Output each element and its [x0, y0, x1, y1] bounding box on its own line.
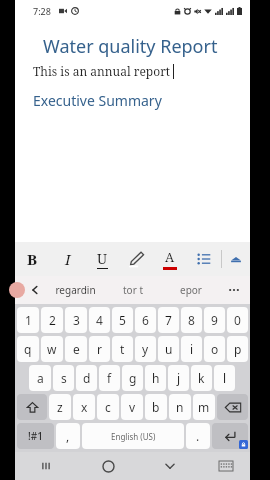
button[interactable]: Recents [15, 452, 77, 480]
staticText: u [165, 341, 173, 357]
staticText: 9 [211, 312, 218, 328]
button[interactable]: tor t [104, 276, 162, 304]
staticText: English (US) [111, 431, 156, 442]
staticText: l [223, 370, 227, 386]
button[interactable]: k [191, 365, 212, 391]
staticText: 4 [96, 312, 103, 328]
staticText: d [83, 370, 91, 386]
staticText: f [107, 370, 112, 386]
button[interactable]: v [121, 394, 143, 420]
staticText: m [198, 399, 210, 415]
staticText: i [190, 341, 194, 357]
button[interactable]: s [53, 365, 74, 391]
staticText: B [27, 249, 38, 269]
button[interactable]: Bold [15, 242, 50, 276]
button[interactable]: b [145, 394, 167, 420]
button[interactable]: 3 [65, 307, 87, 333]
button[interactable]: 4 [89, 307, 110, 333]
button[interactable]: e [65, 336, 87, 362]
button[interactable]: p [227, 336, 248, 362]
staticText: k [198, 370, 205, 386]
button[interactable]: j [168, 365, 189, 391]
button[interactable]: 0 [227, 307, 248, 333]
button[interactable]: u [158, 336, 179, 362]
staticText: c [105, 399, 111, 415]
staticText: s [61, 370, 67, 386]
staticText: U [97, 249, 108, 268]
staticText: v [129, 399, 136, 415]
button[interactable]: d [76, 365, 97, 391]
button[interactable]: Keyboard [201, 452, 250, 480]
staticText: Executive Summary [33, 91, 162, 110]
button[interactable]: q [17, 336, 39, 362]
button[interactable]: y [135, 336, 156, 362]
button[interactable]: Home [77, 452, 139, 480]
button[interactable]: z [49, 394, 71, 420]
button[interactable]: Highlight [119, 242, 153, 276]
button[interactable]: Underline [85, 242, 119, 276]
button[interactable]: 2 [41, 307, 63, 333]
button[interactable]: t [112, 336, 133, 362]
button[interactable]: Shift [17, 394, 47, 420]
button[interactable]: Font color [153, 242, 187, 276]
button[interactable]: i [181, 336, 202, 362]
button[interactable]: x [73, 394, 95, 420]
staticText: . [196, 428, 200, 444]
button[interactable]: n [169, 394, 191, 420]
button[interactable]: Previous [26, 281, 44, 299]
button[interactable]: , [56, 423, 80, 449]
staticText: This is an annual report [33, 63, 171, 79]
staticText: n [176, 399, 184, 415]
staticText: p [234, 341, 242, 357]
staticText: 3 [73, 312, 80, 328]
button[interactable]: Enter [212, 423, 248, 449]
staticText: y [142, 341, 149, 357]
staticText: tor t [123, 283, 143, 297]
button[interactable]: . [186, 423, 210, 449]
staticText: I [65, 249, 71, 269]
staticText: Water quality Report [43, 34, 240, 59]
button[interactable]: a [29, 365, 51, 391]
button[interactable]: Symbols [17, 423, 54, 449]
button[interactable]: c [97, 394, 119, 420]
button[interactable]: r [89, 336, 110, 362]
staticText: b [152, 399, 160, 415]
button[interactable]: 9 [204, 307, 225, 333]
button[interactable]: 8 [181, 307, 202, 333]
button[interactable]: l [214, 365, 235, 391]
staticText: r [97, 341, 102, 357]
button[interactable]: m [193, 394, 215, 420]
button[interactable]: w [41, 336, 63, 362]
button[interactable]: English (US) [82, 423, 184, 449]
staticText: regardin [55, 283, 96, 297]
staticText: o [211, 341, 219, 357]
staticText: w [47, 341, 57, 357]
button[interactable]: f [99, 365, 120, 391]
staticText: g [129, 370, 137, 386]
staticText: j [177, 370, 181, 386]
staticText: a [37, 370, 44, 386]
button[interactable]: regardin [47, 276, 104, 304]
staticText: A [165, 248, 175, 266]
button[interactable]: 6 [135, 307, 156, 333]
button[interactable]: 5 [112, 307, 133, 333]
staticText: 7:28 [33, 5, 51, 17]
button[interactable]: o [204, 336, 225, 362]
staticText: q [24, 341, 32, 357]
button[interactable]: Back [139, 452, 201, 480]
button[interactable]: Italic [50, 242, 85, 276]
staticText: 5 [119, 312, 126, 328]
button[interactable]: h [145, 365, 166, 391]
button[interactable]: 7 [158, 307, 179, 333]
staticText: 1 [25, 312, 32, 328]
staticText: epor [180, 283, 202, 297]
button[interactable]: epor [162, 276, 220, 304]
button[interactable]: Backspace [217, 394, 248, 420]
button[interactable]: Expand toolbar [222, 242, 250, 276]
staticText: 8 [188, 312, 195, 328]
staticText: e [73, 341, 80, 357]
button[interactable]: Bullet list [187, 242, 221, 276]
button[interactable]: 1 [17, 307, 39, 333]
button[interactable]: g [122, 365, 143, 391]
button[interactable]: More options [224, 280, 244, 300]
